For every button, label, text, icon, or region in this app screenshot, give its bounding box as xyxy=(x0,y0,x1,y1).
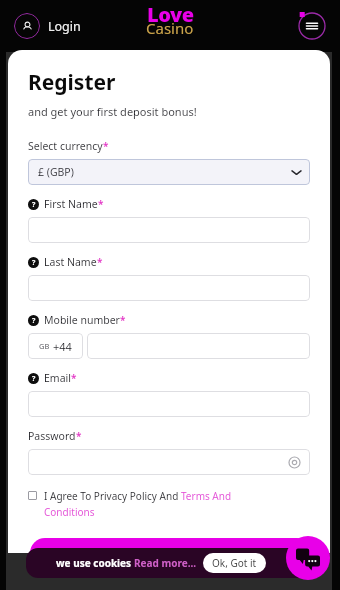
staticText: Password xyxy=(28,429,76,443)
staticText: * xyxy=(98,197,104,211)
button[interactable] xyxy=(28,217,310,243)
staticText: GB xyxy=(39,341,50,351)
staticText: Mobile number xyxy=(44,313,120,327)
button[interactable]: £ (GBP) xyxy=(28,159,310,185)
staticText: First Name xyxy=(44,197,98,211)
button[interactable]: GB xyxy=(28,333,83,359)
staticText: ? xyxy=(32,200,36,210)
staticText: ? xyxy=(32,316,36,326)
staticText: Select currency xyxy=(28,139,103,153)
staticText: Terms And xyxy=(181,489,232,503)
button[interactable] xyxy=(28,275,310,301)
other: Show password xyxy=(289,457,300,468)
staticText: Read more... xyxy=(134,556,197,570)
staticText: and get your first deposit bonus! xyxy=(28,104,197,119)
staticText: +44 xyxy=(53,339,72,354)
staticText: we use cookies xyxy=(56,556,134,570)
staticText: Love xyxy=(147,1,194,28)
staticText: Conditions xyxy=(44,505,95,519)
staticText: ? xyxy=(32,374,36,384)
staticText: ? xyxy=(32,258,36,268)
staticText: * xyxy=(120,313,126,327)
staticText: Register xyxy=(28,68,116,97)
staticText: Ok, Got it xyxy=(212,556,257,570)
button[interactable] xyxy=(28,391,310,417)
staticText: Last Name xyxy=(44,255,97,269)
button[interactable]: Ok, Got it xyxy=(212,553,257,573)
staticText: I Agree To Privacy Policy And xyxy=(44,489,181,503)
staticText: Casino xyxy=(146,18,194,38)
staticText: £ (GBP) xyxy=(38,165,74,179)
button[interactable]: Start Earning! xyxy=(30,538,312,568)
button[interactable] xyxy=(87,333,310,359)
button[interactable]: Show password xyxy=(28,449,310,475)
staticText: Start Earning! xyxy=(130,545,213,561)
staticText: * xyxy=(71,371,77,385)
button[interactable]: Open chat xyxy=(286,536,330,580)
staticText: * xyxy=(76,429,82,443)
staticText: Login xyxy=(48,18,81,35)
button[interactable]: Login xyxy=(14,13,81,39)
button[interactable]: I Agree To Privacy Policy And xyxy=(28,489,310,519)
staticText: * xyxy=(103,139,109,153)
button[interactable]: Menu xyxy=(298,12,326,40)
staticText: Email xyxy=(44,371,71,385)
staticText: * xyxy=(97,255,103,269)
